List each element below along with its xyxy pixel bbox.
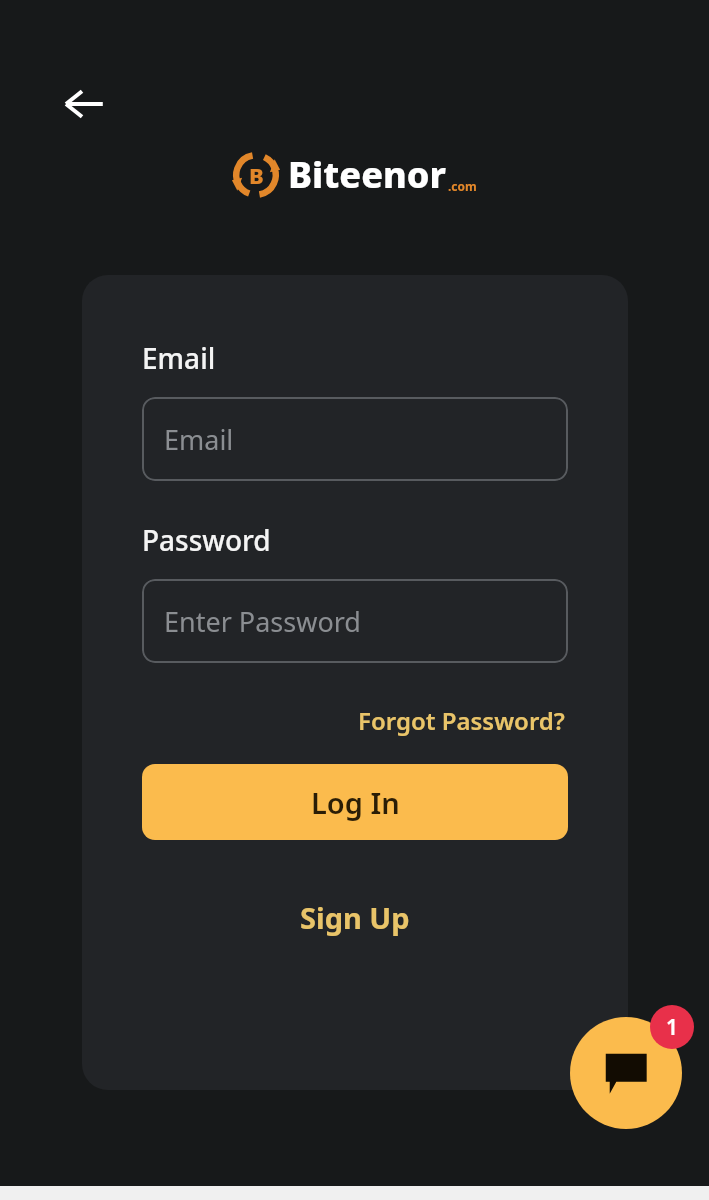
button[interactable]: Email bbox=[142, 397, 568, 481]
staticText: Log In bbox=[311, 783, 400, 822]
button[interactable]: Sign Up bbox=[292, 894, 418, 941]
staticText: Email bbox=[142, 339, 216, 377]
button[interactable]: Enter Password bbox=[142, 579, 568, 663]
staticText: Sign Up bbox=[300, 898, 410, 937]
button[interactable]: Chat bbox=[570, 1017, 682, 1129]
staticText: B bbox=[249, 160, 264, 190]
staticText: Biteenor bbox=[288, 150, 446, 199]
button[interactable]: Forgot Password? bbox=[355, 701, 568, 740]
staticText: Enter Password bbox=[164, 603, 361, 640]
button[interactable]: Log In bbox=[142, 764, 568, 840]
staticText: Forgot Password? bbox=[358, 704, 565, 737]
staticText: 1 bbox=[666, 1013, 679, 1042]
staticText: .com bbox=[448, 178, 477, 194]
button[interactable]: Back bbox=[50, 70, 118, 138]
staticText: Email bbox=[164, 421, 234, 458]
staticText: Password bbox=[142, 521, 271, 559]
